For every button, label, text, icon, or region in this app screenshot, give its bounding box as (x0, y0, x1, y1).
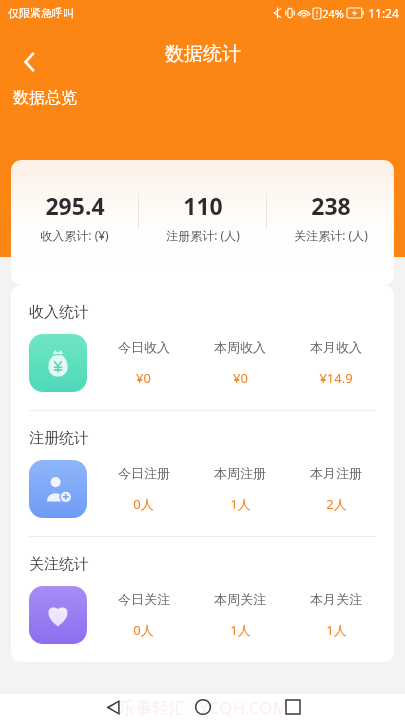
button[interactable]: 返回 (89, 694, 137, 720)
staticText: 数据统计 (165, 42, 241, 66)
button[interactable]: 收入统计 (11, 285, 394, 410)
staticText: 295.4 (45, 190, 105, 221)
staticText: 1人 (230, 621, 251, 639)
staticText: 乐事轻汇 · YCQH.COM (118, 696, 288, 719)
staticText: 本月关注 (310, 591, 362, 607)
button[interactable]: 注册统计 (11, 411, 394, 536)
staticText: 本周关注 (214, 591, 266, 607)
staticText: 数据总览 (13, 88, 77, 108)
button[interactable]: 最近任务 (269, 694, 317, 720)
staticText: ¥0 (233, 369, 248, 387)
staticText: 0人 (133, 621, 154, 639)
staticText: 110 (183, 190, 223, 221)
staticText: 关注统计 (29, 555, 89, 574)
staticText: 本周注册 (214, 465, 266, 481)
staticText: 仅限紧急呼叫 (8, 6, 74, 20)
button[interactable]: 主页 (179, 694, 227, 720)
staticText: ¥14.9 (319, 369, 353, 387)
staticText: 注册累计: (人) (166, 227, 240, 243)
staticText: 收入统计 (29, 303, 89, 322)
staticText: 本周收入 (214, 339, 266, 355)
staticText: 本月注册 (310, 465, 362, 481)
staticText: 2人 (326, 495, 347, 513)
staticText: 24% (322, 6, 344, 21)
button[interactable]: 返回 (6, 38, 54, 86)
staticText: 238 (311, 190, 351, 221)
staticText: 关注累计: (人) (294, 227, 368, 243)
staticText: 1人 (230, 495, 251, 513)
staticText: 11:24 (368, 5, 399, 21)
staticText: 1人 (326, 621, 347, 639)
staticText: 今日关注 (118, 591, 170, 607)
staticText: 0人 (133, 495, 154, 513)
button[interactable]: 关注统计 (11, 537, 394, 662)
staticText: 本月收入 (310, 339, 362, 355)
staticText: 今日收入 (118, 339, 170, 355)
staticText: 今日注册 (118, 465, 170, 481)
staticText: 注册统计 (29, 429, 89, 448)
staticText: ¥0 (136, 369, 151, 387)
staticText: 收入累计: (¥) (40, 227, 109, 243)
